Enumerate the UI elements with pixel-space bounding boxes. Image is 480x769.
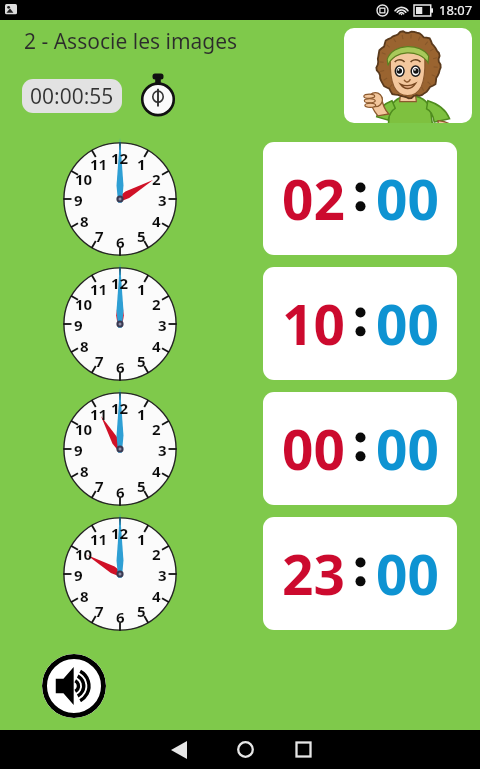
staticText: 8 <box>80 336 89 356</box>
staticText: 10 <box>75 544 93 564</box>
staticText: 12 <box>111 523 129 543</box>
staticText: 12 <box>111 398 129 418</box>
staticText: 6 <box>116 482 125 502</box>
staticText: 00:00:55 <box>30 82 114 111</box>
staticText: 2 - Associe les images <box>24 27 238 56</box>
staticText: 12 <box>111 273 129 293</box>
staticText: 4 <box>152 211 161 231</box>
staticText: 23 <box>282 536 345 611</box>
staticText: 18:07 <box>439 1 473 19</box>
staticText: 11 <box>90 529 108 549</box>
staticText: 9 <box>74 190 83 210</box>
staticText: 10 <box>75 294 93 314</box>
staticText: 3 <box>158 190 167 210</box>
button[interactable]: 1 <box>63 517 177 631</box>
staticText: 7 <box>95 351 104 371</box>
staticText: 00 <box>376 536 439 611</box>
staticText: 9 <box>74 315 83 335</box>
staticText: 8 <box>80 586 89 606</box>
button[interactable]: Sound <box>42 654 106 718</box>
staticText: 8 <box>80 461 89 481</box>
staticText: 00 <box>376 411 439 486</box>
button[interactable]: 1 <box>63 267 177 381</box>
staticText: 4 <box>152 461 161 481</box>
staticText: 10 <box>75 169 93 189</box>
staticText: 1 <box>137 404 146 424</box>
staticText: 4 <box>152 336 161 356</box>
staticText: 9 <box>74 440 83 460</box>
staticText: 6 <box>116 607 125 627</box>
staticText: 9 <box>74 565 83 585</box>
staticText: 4 <box>152 586 161 606</box>
staticText: 8 <box>80 211 89 231</box>
staticText: 7 <box>95 601 104 621</box>
button[interactable]: 00:00:55 <box>22 79 122 113</box>
staticText: 6 <box>116 232 125 252</box>
staticText: 1 <box>137 154 146 174</box>
staticText: 00 <box>282 411 345 486</box>
button[interactable]: 1 <box>63 392 177 506</box>
staticText: 5 <box>137 351 146 371</box>
staticText: 11 <box>90 154 108 174</box>
button[interactable]: Recent apps <box>275 730 331 769</box>
button[interactable] <box>344 28 472 123</box>
button[interactable]: 00 <box>263 392 457 505</box>
staticText: 12 <box>111 148 129 168</box>
staticText: 2 <box>152 294 161 314</box>
staticText: 2 <box>152 544 161 564</box>
staticText: 7 <box>95 476 104 496</box>
staticText: 2 <box>152 169 161 189</box>
button[interactable]: 1 <box>63 142 177 256</box>
button[interactable]: 02 <box>263 142 457 255</box>
staticText: 10 <box>282 286 345 361</box>
button[interactable]: Chronometer <box>139 76 177 114</box>
button[interactable]: 10 <box>263 267 457 380</box>
staticText: 6 <box>116 357 125 377</box>
staticText: 3 <box>158 565 167 585</box>
staticText: 11 <box>90 404 108 424</box>
staticText: 5 <box>137 476 146 496</box>
staticText: 11 <box>90 279 108 299</box>
staticText: 10 <box>75 419 93 439</box>
staticText: 7 <box>95 226 104 246</box>
staticText: 5 <box>137 601 146 621</box>
staticText: 5 <box>137 226 146 246</box>
staticText: 2 <box>152 419 161 439</box>
staticText: 1 <box>137 279 146 299</box>
staticText: 00 <box>376 161 439 236</box>
button[interactable]: Back <box>142 730 215 769</box>
button[interactable]: Home <box>215 730 275 769</box>
staticText: 02 <box>282 161 345 236</box>
staticText: 3 <box>158 440 167 460</box>
staticText: 00 <box>376 286 439 361</box>
button[interactable]: 23 <box>263 517 457 630</box>
staticText: 3 <box>158 315 167 335</box>
staticText: 1 <box>137 529 146 549</box>
button[interactable]: 2 - Associe les images <box>24 27 238 56</box>
